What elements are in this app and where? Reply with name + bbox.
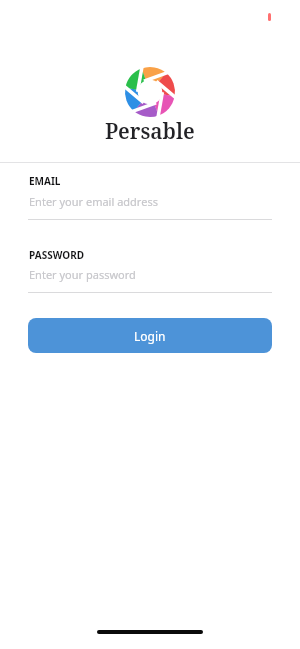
staticText: EMAIL [29, 174, 61, 188]
button[interactable]: Enter your password [29, 267, 136, 282]
staticText: Persable [105, 117, 195, 146]
staticText: PASSWORD [29, 248, 85, 262]
button[interactable]: Login [28, 318, 272, 353]
staticText: Login [134, 328, 166, 344]
button[interactable]: Enter your email address [29, 194, 158, 209]
